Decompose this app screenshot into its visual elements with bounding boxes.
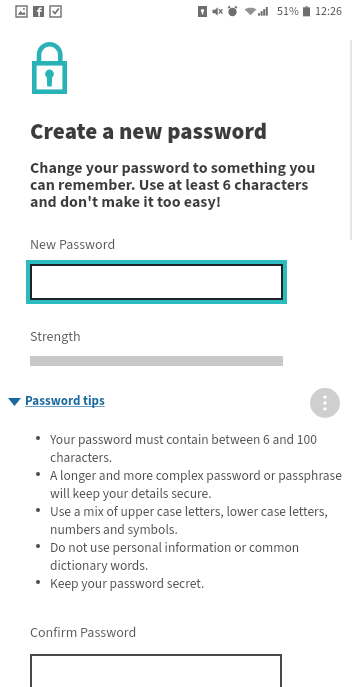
staticText: 12:26 — [315, 3, 342, 20]
staticText: numbers and symbols. — [50, 520, 178, 539]
staticText: dictionary words. — [50, 556, 149, 575]
staticText: Password tips — [25, 392, 105, 411]
staticText: Do not use personal information or commo… — [50, 538, 300, 557]
staticText: A longer and more complex password or pa… — [50, 466, 342, 485]
staticText: New Password — [30, 235, 116, 255]
staticText: characters. — [50, 448, 113, 467]
staticText: Confirm Password — [30, 623, 137, 643]
button[interactable]: More options — [310, 388, 340, 418]
staticText: Change your password to something you ca… — [30, 157, 330, 214]
button[interactable] — [30, 654, 282, 687]
button[interactable] — [30, 264, 283, 300]
staticText: Create a new password — [30, 115, 268, 148]
button[interactable]: Password tips — [8, 392, 105, 411]
staticText: Your password must contain between 6 and… — [50, 430, 317, 449]
staticText: Keep your password secret. — [50, 574, 205, 593]
staticText: 51% — [277, 3, 299, 20]
staticText: will keep your details secure. — [50, 484, 212, 503]
staticText: Use a mix of upper case letters, lower c… — [50, 502, 328, 521]
staticText: Strength — [30, 327, 81, 347]
